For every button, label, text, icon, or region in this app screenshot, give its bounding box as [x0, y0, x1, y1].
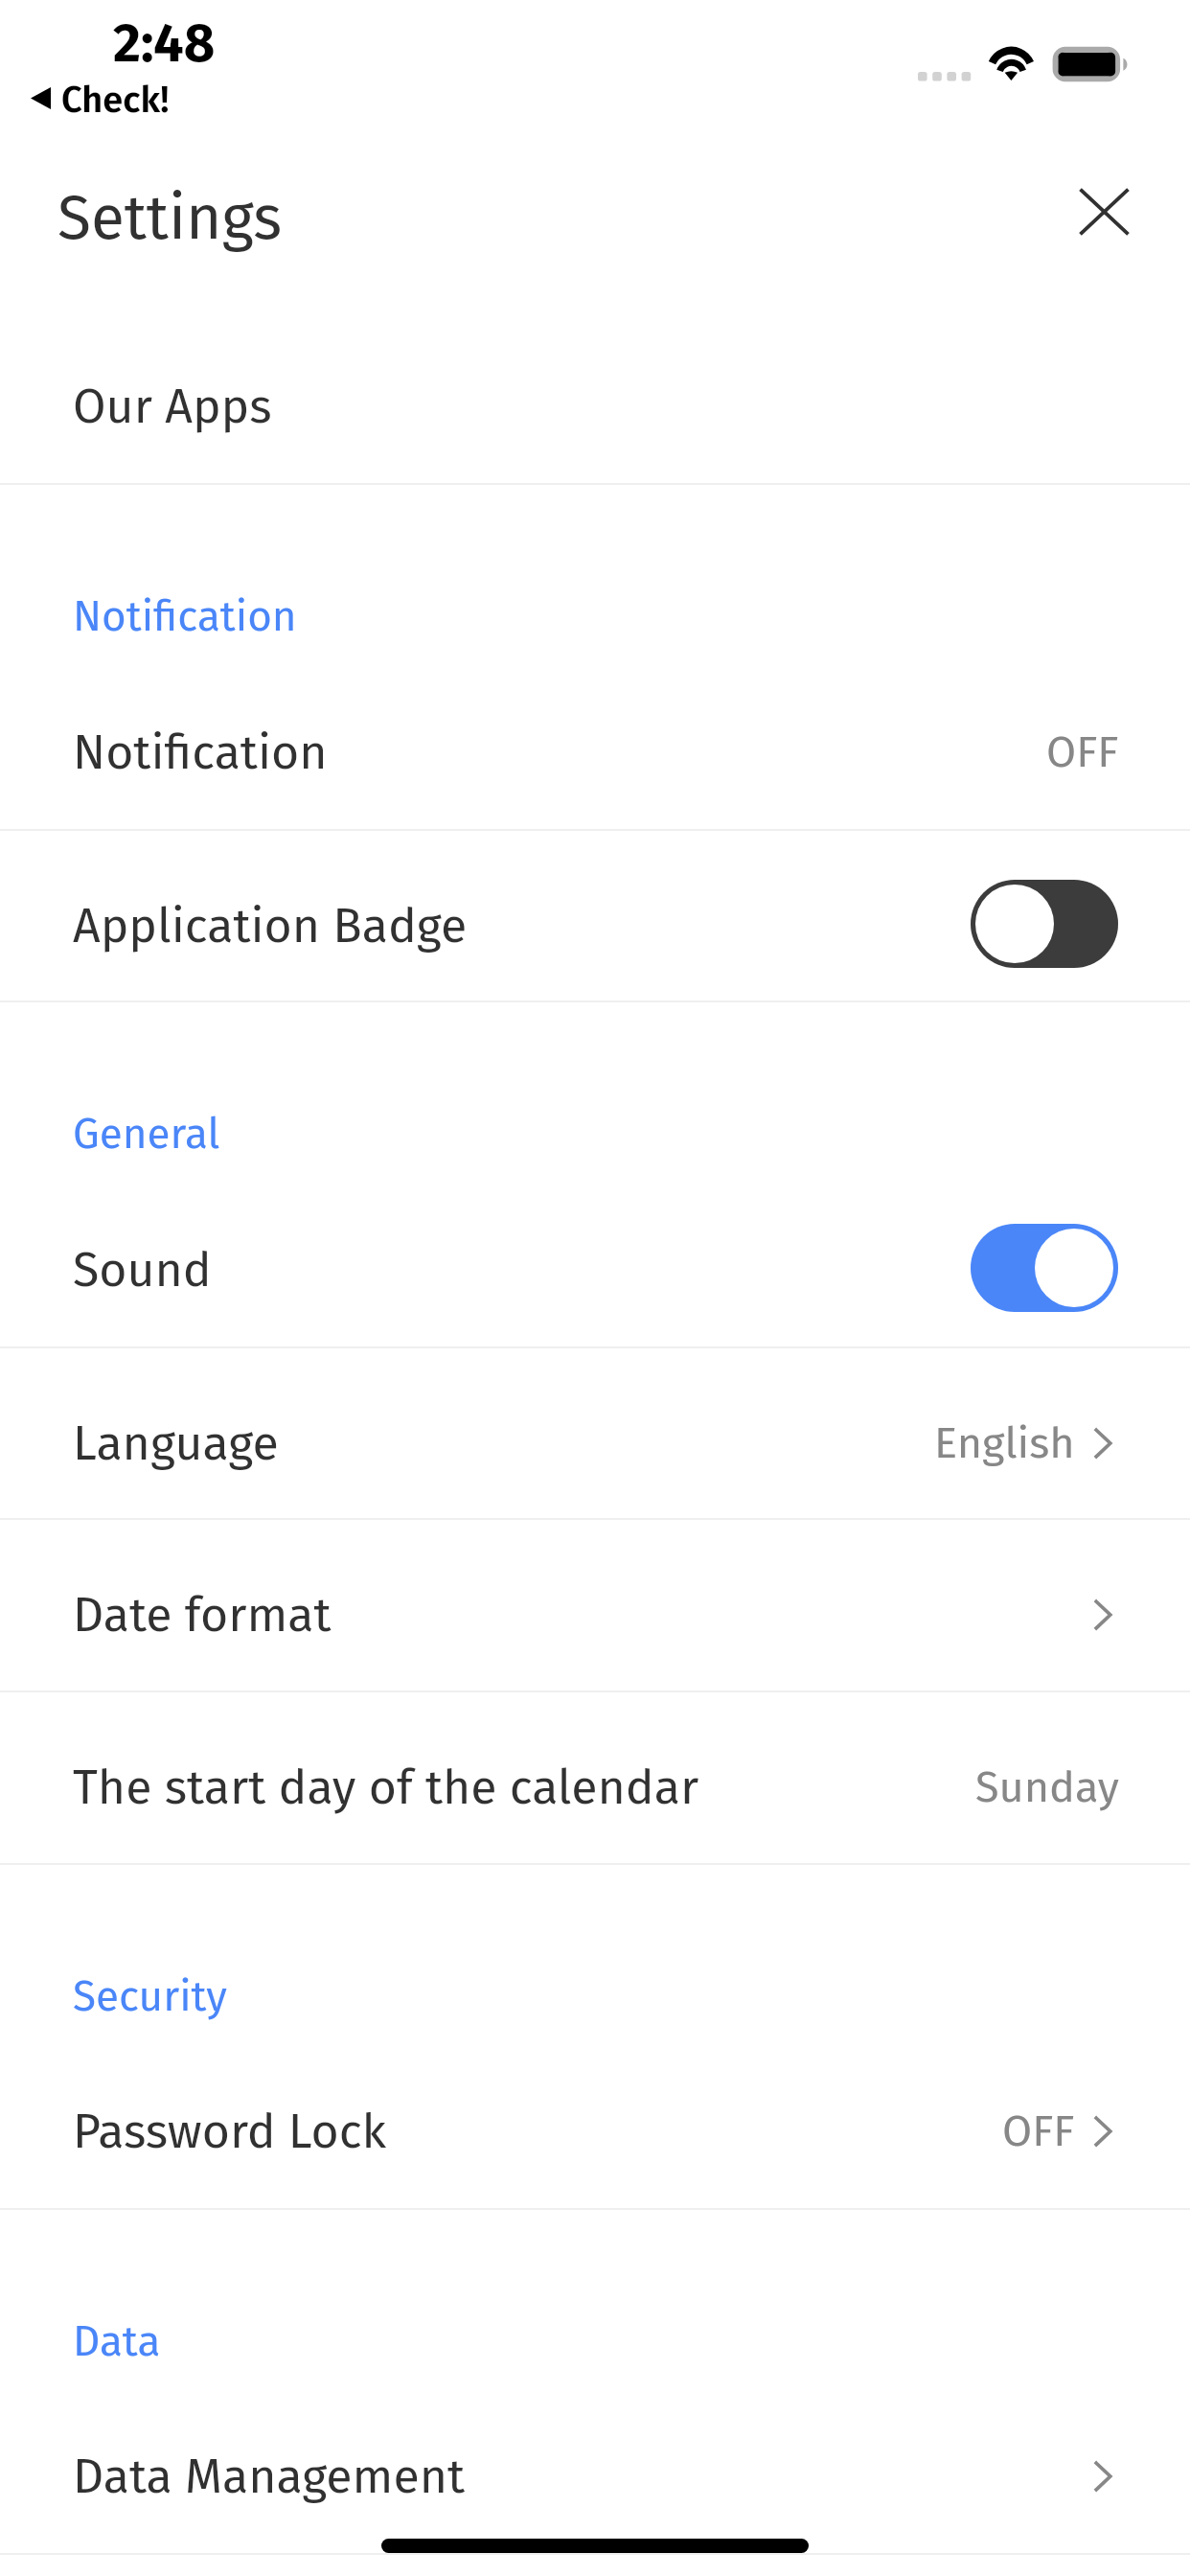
staticText: Date format	[73, 1586, 332, 1644]
staticText: English	[934, 1417, 1075, 1469]
staticText: Data	[73, 2316, 161, 2367]
staticText: Our Apps	[73, 378, 272, 435]
button[interactable]: Application Badge	[0, 831, 1190, 1000]
staticText: Application Badge	[73, 897, 468, 954]
button[interactable]: Language	[0, 1348, 1190, 1518]
staticText: General	[73, 1109, 220, 1160]
button[interactable]: Our Apps	[0, 310, 1190, 483]
staticText: OFF	[1002, 2105, 1075, 2157]
staticText: Sunday	[975, 1761, 1119, 1813]
button[interactable]: Password Lock	[0, 2035, 1190, 2208]
staticText: OFF	[1046, 726, 1119, 778]
staticText: Sound	[73, 1241, 212, 1299]
button[interactable]: Close	[1059, 167, 1149, 257]
button[interactable]: Data Management	[0, 2380, 1190, 2553]
button[interactable]: Toggle	[971, 1224, 1118, 1312]
staticText: Data Management	[73, 2448, 466, 2505]
staticText: Language	[73, 1414, 279, 1472]
staticText: Notification	[73, 724, 328, 781]
button[interactable]: Toggle	[971, 880, 1118, 968]
staticText: Notification	[73, 591, 297, 642]
staticText: Password Lock	[73, 2103, 387, 2160]
staticText: Security	[73, 1971, 227, 2022]
button[interactable]: The start day of the calendar	[0, 1692, 1190, 1863]
staticText: 2:48	[113, 11, 216, 76]
button[interactable]: Date format	[0, 1520, 1190, 1690]
staticText: Settings	[57, 181, 283, 255]
button[interactable]: Notification	[0, 655, 1190, 829]
staticText: Check!	[61, 78, 170, 122]
staticText: The start day of the calendar	[73, 1759, 699, 1816]
button[interactable]: Sound	[0, 1174, 1190, 1346]
